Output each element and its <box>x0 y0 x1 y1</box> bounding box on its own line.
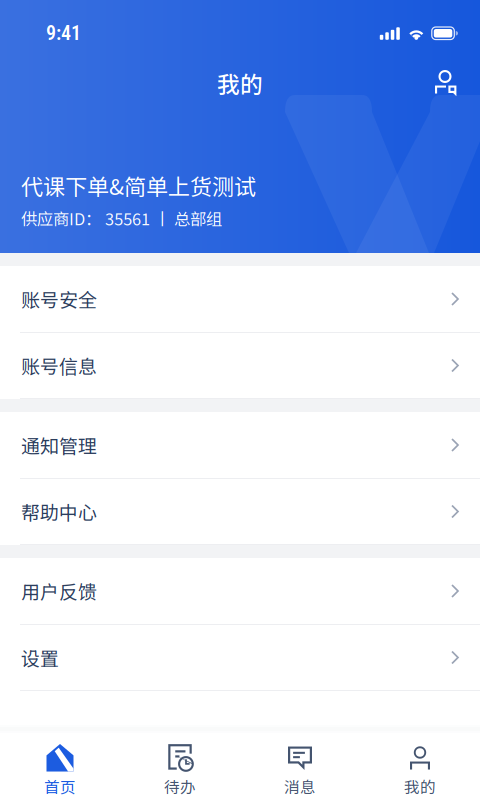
button[interactable]: 消息 <box>240 733 360 800</box>
staticText: 帮助中心 <box>21 498 97 525</box>
button[interactable]: 帮助中心 <box>0 479 480 544</box>
button[interactable]: 客服 <box>423 61 467 105</box>
button[interactable]: 账号信息 <box>0 333 480 398</box>
button[interactable]: 账号安全 <box>0 266 480 332</box>
button[interactable]: 待办 <box>120 733 240 800</box>
staticText: 9:41 <box>46 22 81 45</box>
button[interactable]: 首页 <box>0 733 120 800</box>
button[interactable]: 用户反馈 <box>0 558 480 624</box>
staticText: 供应商ID： 35561 丨 总部组 <box>21 206 222 230</box>
staticText: 设置 <box>21 644 59 671</box>
staticText: 账号安全 <box>21 285 97 313</box>
staticText: 消息 <box>284 775 316 798</box>
staticText: 待办 <box>164 775 196 798</box>
button[interactable]: 通知管理 <box>0 412 480 478</box>
staticText: 我的 <box>404 775 436 798</box>
button[interactable]: 设置 <box>0 625 480 690</box>
staticText: 通知管理 <box>21 431 97 459</box>
staticText: 用户反馈 <box>21 577 97 605</box>
staticText: 首页 <box>44 775 76 798</box>
staticText: 我的 <box>217 67 263 99</box>
staticText: 代课下单&简单上货测试 <box>21 169 256 201</box>
button[interactable]: 我的 <box>360 733 480 800</box>
staticText: 账号信息 <box>21 352 97 379</box>
